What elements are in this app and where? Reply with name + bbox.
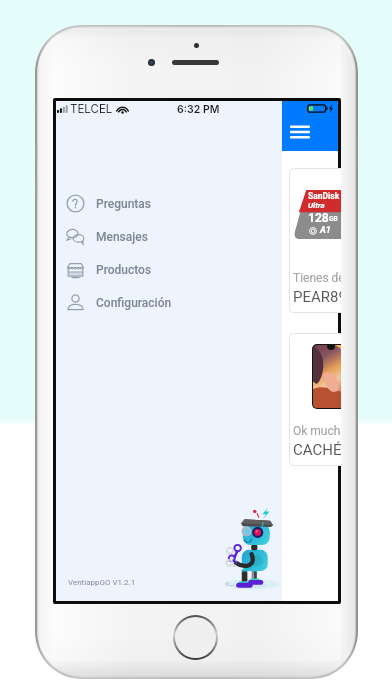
staticText: SanDisk [308,191,340,201]
staticText: TELCEL [70,102,113,116]
staticText: Ok mucha [293,424,341,438]
staticText: Preguntas [96,197,152,211]
button[interactable]: Configuración [56,286,282,319]
button[interactable]: SanDisk [289,168,341,313]
button[interactable]: Mensajes [56,220,282,253]
staticText: Mensajes [96,230,148,244]
staticText: 6:32 PM [177,103,220,116]
staticText: A1 [320,225,331,236]
staticText: GB [329,215,338,223]
staticText: VentiappGO V1.2.1 [68,578,136,587]
staticText: Tienes de [293,271,341,285]
staticText: Configuración [96,296,172,310]
staticText: Ultra [308,201,325,210]
staticText: PEAR899 [293,288,341,306]
staticText: Productos [96,263,152,277]
button[interactable]: Open navigation menu [288,120,312,144]
button[interactable]: Preguntas [56,187,282,220]
staticText: 128 [308,211,329,225]
button[interactable]: Productos [56,253,282,286]
button[interactable]: Home [175,617,216,658]
staticText: CACHÉR [293,441,341,459]
button[interactable]: Ok mucha [289,333,341,466]
